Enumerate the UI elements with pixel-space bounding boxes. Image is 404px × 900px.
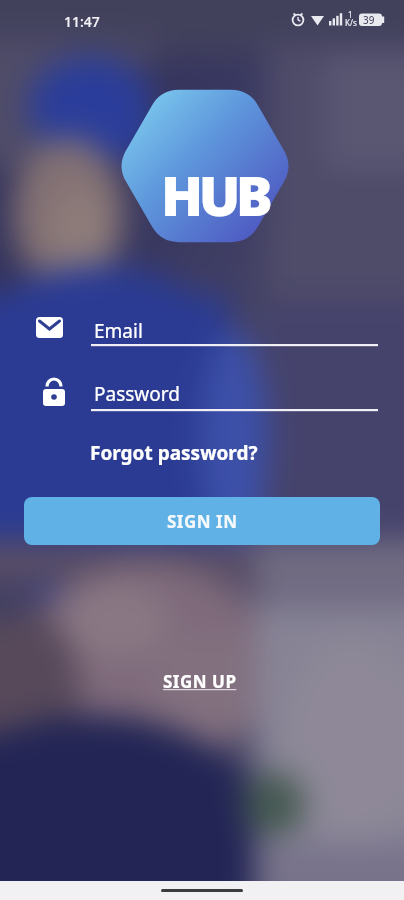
button[interactable]: Password <box>24 375 380 415</box>
button[interactable]: Email <box>24 310 380 350</box>
staticText: K/s <box>345 17 357 28</box>
button[interactable]: Forgot password? <box>90 440 258 466</box>
staticText: SIGN UP <box>163 670 237 693</box>
staticText: 39 <box>363 13 375 27</box>
staticText: Forgot password? <box>90 440 258 466</box>
staticText: SIGN IN <box>167 510 238 533</box>
button[interactable]: SIGN IN <box>24 497 380 545</box>
staticText: Email <box>94 318 143 344</box>
staticText: Password <box>94 381 180 407</box>
button[interactable]: SIGN UP <box>163 670 237 693</box>
staticText: 1 <box>348 9 353 20</box>
staticText: HUB <box>161 157 269 232</box>
staticText: 11:47 <box>64 12 100 31</box>
